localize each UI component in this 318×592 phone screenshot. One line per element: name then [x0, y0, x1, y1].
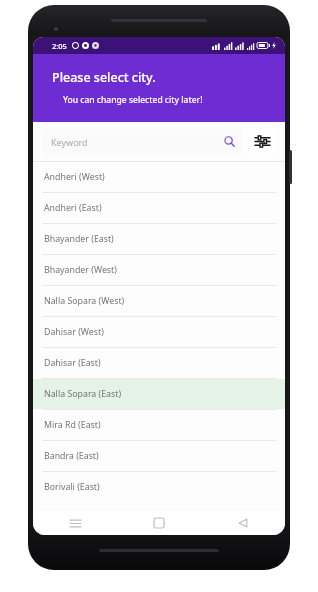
button[interactable]: Andheri (West): [33, 162, 285, 192]
button[interactable]: Bandra (East): [33, 441, 285, 471]
staticText: Borivali (East): [44, 481, 100, 493]
staticText: Bhayander (West): [44, 264, 117, 276]
button[interactable]: Bhayander (East): [33, 224, 285, 254]
button[interactable]: Filter: [249, 129, 275, 154]
staticText: Please select city.: [52, 69, 156, 86]
staticText: Bhayander (East): [44, 233, 114, 245]
button[interactable]: Home: [117, 511, 201, 535]
button[interactable]: Keyword: [43, 129, 241, 154]
staticText: 2:05: [52, 41, 67, 51]
staticText: Bandra (East): [44, 450, 99, 462]
button[interactable]: Recent apps: [33, 511, 117, 535]
staticText: Keyword: [51, 136, 224, 148]
staticText: Nalla Sopara (West): [44, 295, 125, 307]
button[interactable]: Bhayander (West): [33, 255, 285, 285]
button[interactable]: Nalla Sopara (East): [33, 379, 285, 409]
button[interactable]: Dahisar (East): [33, 348, 285, 378]
staticText: Andheri (West): [44, 171, 105, 183]
button[interactable]: Back: [201, 511, 285, 535]
staticText: Mira Rd (East): [44, 419, 101, 431]
staticText: Andheri (East): [44, 202, 102, 214]
button[interactable]: Dahisar (West): [33, 317, 285, 347]
button[interactable]: Nalla Sopara (West): [33, 286, 285, 316]
button[interactable]: Andheri (East): [33, 193, 285, 223]
button[interactable]: Borivali (East): [33, 472, 285, 502]
staticText: Nalla Sopara (East): [44, 388, 122, 400]
button[interactable]: Mira Rd (East): [33, 410, 285, 440]
staticText: You can change selected city later!: [63, 94, 271, 106]
staticText: Dahisar (East): [44, 357, 101, 369]
staticText: Dahisar (West): [44, 326, 104, 338]
